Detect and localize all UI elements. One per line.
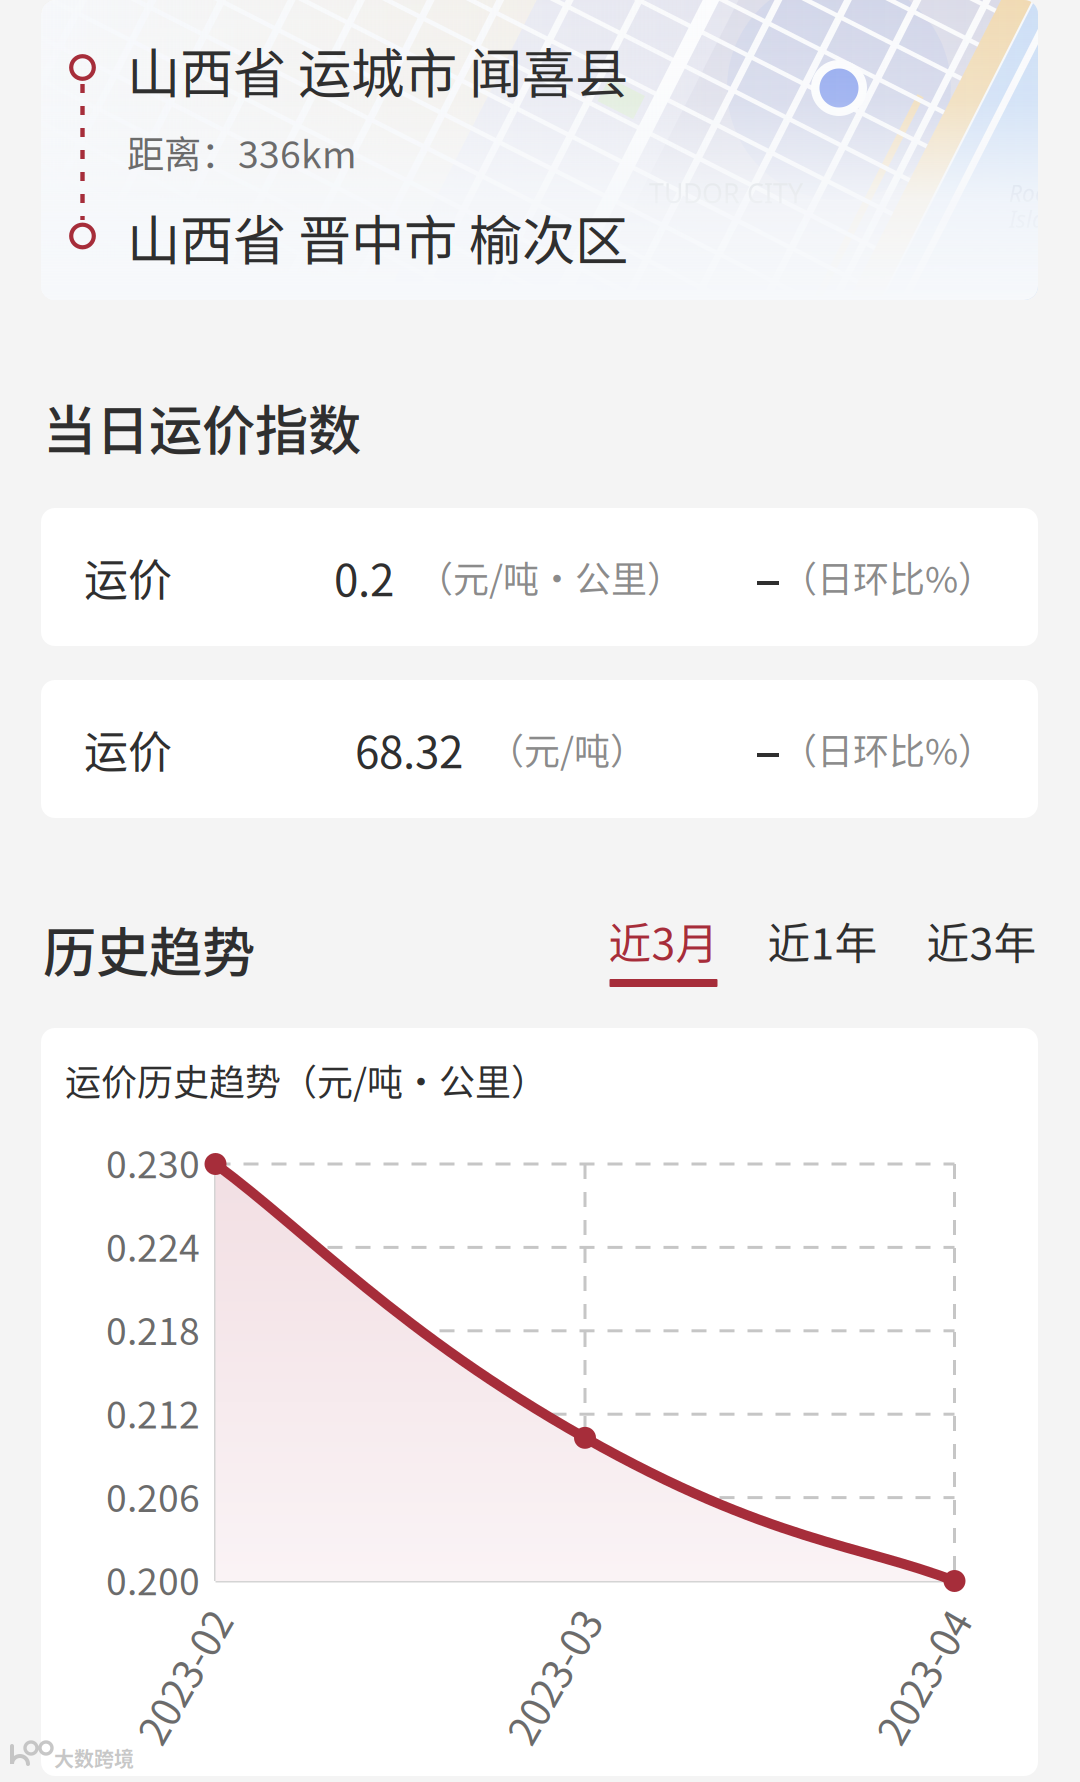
button[interactable]: 近3年 xyxy=(902,908,1061,996)
staticText: 山西省 晋中市 榆次区 xyxy=(127,198,628,276)
staticText: 0.200 xyxy=(106,1552,200,1606)
staticText: 山西省 运城市 闻喜县 xyxy=(127,31,628,109)
staticText: 0.224 xyxy=(106,1218,200,1272)
staticText: （日环比%） xyxy=(781,723,994,775)
staticText: 0.230 xyxy=(106,1135,200,1189)
staticText: 2023-02 xyxy=(110,1647,256,1705)
staticText: 0.2 xyxy=(334,545,394,609)
staticText: 2023-03 xyxy=(480,1647,626,1705)
staticText: 大数跨境 xyxy=(54,1743,134,1772)
button[interactable]: 运价 xyxy=(41,508,1038,646)
staticText: 0.218 xyxy=(106,1302,200,1356)
staticText: 0.212 xyxy=(106,1385,200,1439)
staticText: 当日运价指数 xyxy=(43,388,361,466)
button[interactable]: TUDOR CITY xyxy=(41,0,1038,300)
button[interactable]: 近3月 xyxy=(584,908,743,996)
staticText: 2023-04 xyxy=(849,1647,995,1705)
staticText: 68.32 xyxy=(355,717,463,781)
staticText: 运价历史趋势（元/吨·公里） xyxy=(65,1054,547,1106)
staticText: TUDOR CITY xyxy=(649,175,803,211)
button[interactable]: 近1年 xyxy=(743,908,902,996)
staticText: 距离：336km xyxy=(127,125,357,179)
staticText: Roo xyxy=(1009,178,1048,208)
staticText: （元/吨） xyxy=(488,723,646,775)
staticText: （日环比%） xyxy=(781,551,994,603)
staticText: 近1年 xyxy=(767,910,877,972)
staticText: 近3年 xyxy=(926,910,1036,972)
staticText: 近3月 xyxy=(608,910,718,972)
staticText: 运价 xyxy=(84,545,172,609)
staticText: 历史趋势 xyxy=(43,910,255,988)
button[interactable]: 运价 xyxy=(41,680,1038,818)
staticText: 0.206 xyxy=(106,1469,200,1523)
staticText: 运价 xyxy=(84,717,172,781)
staticText: （元/吨·公里） xyxy=(417,551,683,603)
